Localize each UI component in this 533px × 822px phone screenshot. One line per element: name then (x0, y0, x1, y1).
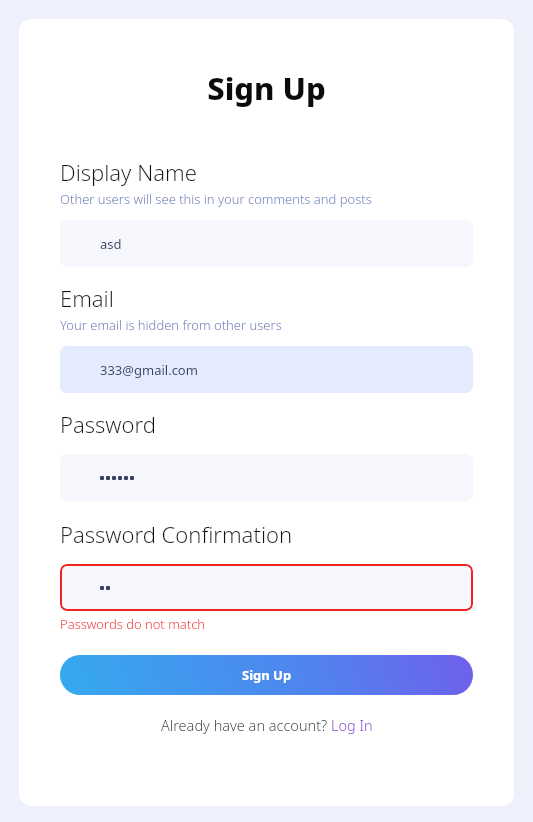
staticText: asd (100, 235, 122, 253)
staticText: Already have an account? (161, 715, 331, 735)
staticText: Password Confirmation (60, 519, 293, 549)
staticText: Your email is hidden from other users (60, 316, 282, 334)
staticText: Log In (331, 715, 373, 735)
staticText: Other users will see this in your commen… (60, 190, 372, 208)
staticText: Sign Up (207, 67, 326, 109)
staticText: Password (60, 409, 156, 439)
button[interactable]: 333@gmail.com (60, 346, 473, 393)
staticText: Passwords do not match (60, 615, 206, 633)
button[interactable]: Log In (331, 715, 373, 735)
staticText: Sign Up (242, 666, 292, 684)
button[interactable] (60, 454, 473, 501)
staticText: Display Name (60, 157, 197, 187)
staticText: 333@gmail.com (100, 361, 198, 379)
button[interactable]: Sign Up (60, 655, 473, 695)
button[interactable]: asd (60, 220, 473, 267)
staticText: Email (60, 283, 114, 313)
button[interactable] (60, 564, 473, 611)
